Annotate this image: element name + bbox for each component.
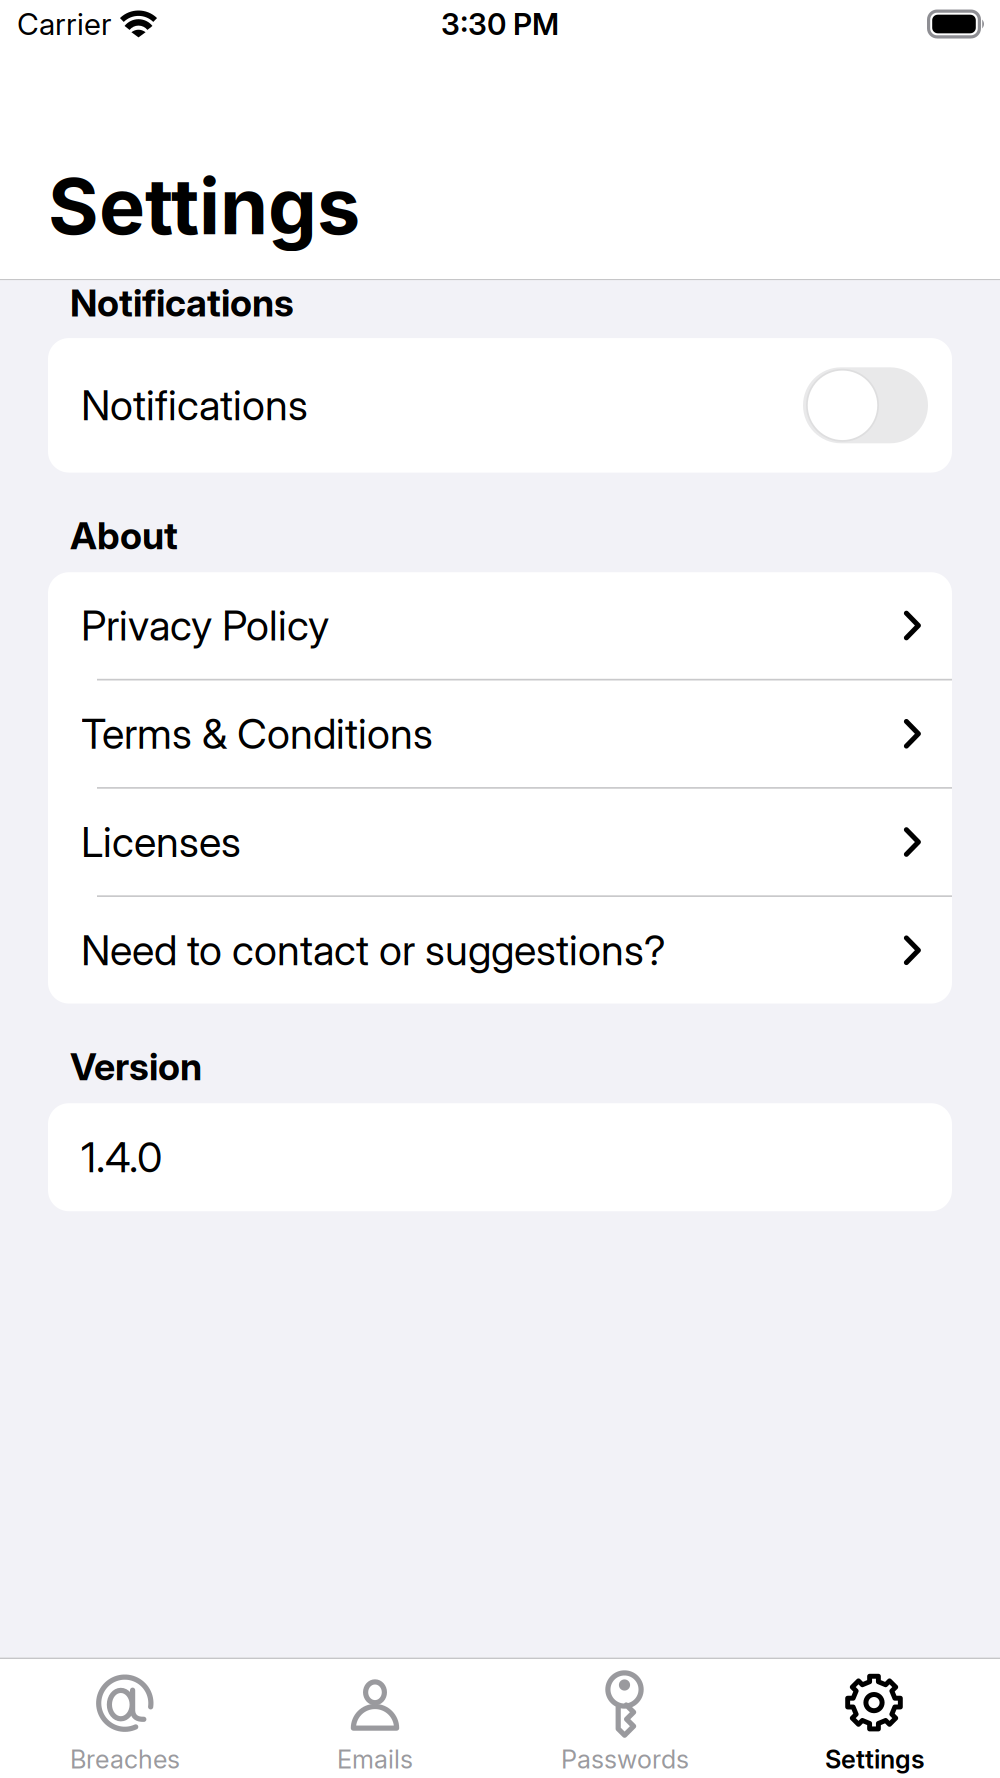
staticText: Notifications — [70, 280, 294, 326]
button[interactable]: Breaches — [0, 1659, 250, 1778]
button[interactable]: Settings — [750, 1659, 1000, 1778]
staticText: Need to contact or suggestions? — [81, 925, 666, 975]
staticText: Breaches — [70, 1744, 180, 1775]
staticText: Notifications — [81, 380, 308, 430]
staticText: 1.4.0 — [81, 1132, 162, 1182]
button[interactable]: Need to contact or suggestions? — [48, 897, 952, 1003]
staticText: Version — [70, 1044, 202, 1089]
staticText: Privacy Policy — [81, 600, 329, 650]
staticText: Carrier — [17, 6, 112, 42]
staticText: Emails — [337, 1744, 413, 1775]
button[interactable]: Licenses — [48, 789, 952, 895]
staticText: About — [70, 513, 178, 558]
staticText: Licenses — [81, 817, 241, 867]
button[interactable]: Passwords — [500, 1659, 750, 1778]
button[interactable] — [803, 367, 928, 443]
staticText: Terms & Conditions — [81, 709, 433, 759]
staticText: Passwords — [561, 1744, 689, 1775]
staticText: Settings — [825, 1744, 925, 1775]
staticText: Settings — [48, 159, 360, 253]
button[interactable]: Privacy Policy — [48, 572, 952, 679]
button[interactable]: Emails — [250, 1659, 500, 1778]
staticText: 3:30 PM — [441, 6, 559, 42]
button[interactable]: Terms & Conditions — [48, 680, 952, 787]
